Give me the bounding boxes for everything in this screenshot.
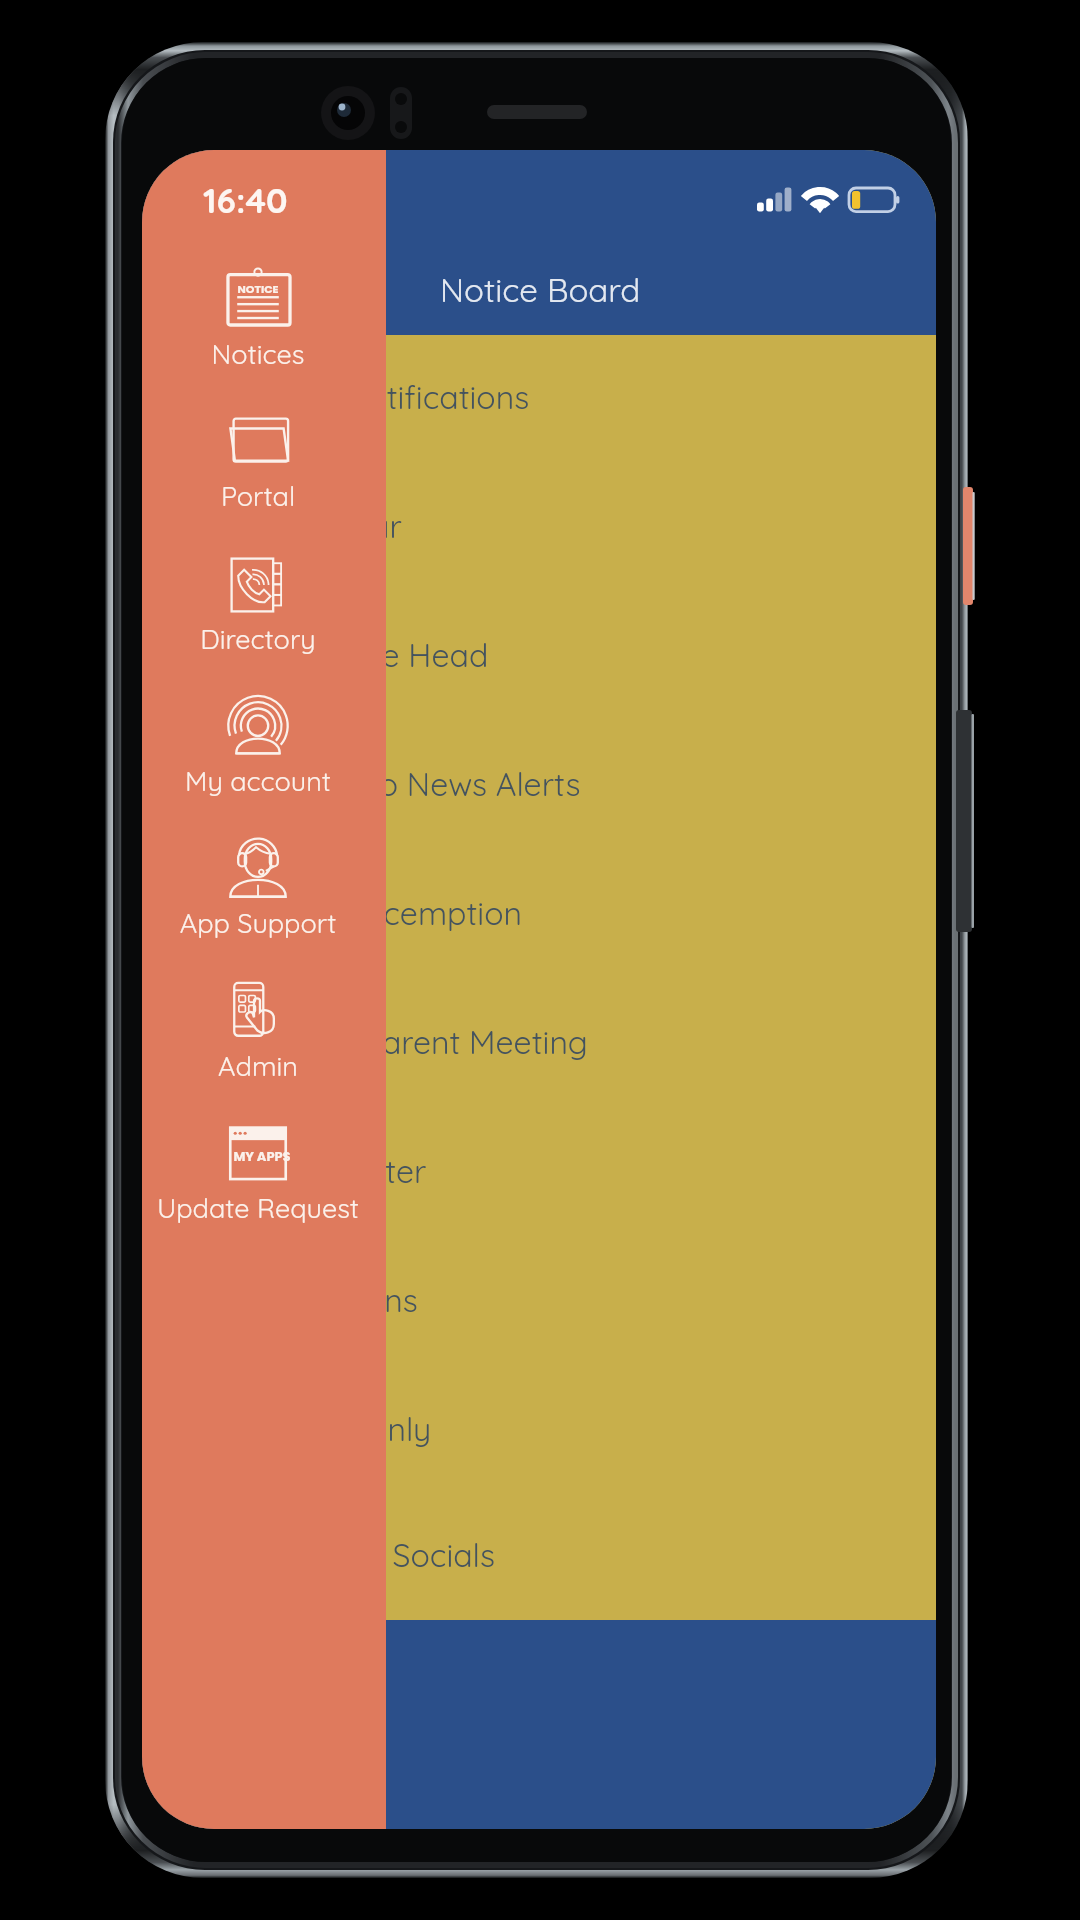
staticText: My account — [142, 764, 380, 798]
button[interactable]: School Socials — [142, 1496, 936, 1620]
button[interactable]: Open navigation menu — [162, 246, 242, 326]
staticText: NOTICE — [225, 281, 291, 296]
button[interactable]: Notices — [340, 1620, 538, 1829]
staticText: Admin — [142, 1049, 380, 1083]
button[interactable]: Teacher Parent Meeting — [142, 980, 936, 1109]
staticText: Echo News Alerts — [326, 764, 581, 804]
button[interactable]: Directory — [142, 552, 386, 672]
staticText: Admissions — [252, 1280, 418, 1320]
button[interactable]: MY APPS — [142, 1121, 386, 1241]
staticText: Staff Only — [283, 1409, 432, 1449]
button[interactable]: My account — [142, 694, 386, 814]
button[interactable]: More — [737, 1620, 936, 1829]
button[interactable]: Admin — [142, 979, 386, 1099]
button[interactable]: Portal — [142, 409, 386, 529]
staticText: 16:40 — [203, 178, 288, 222]
button[interactable]: Home — [142, 1620, 340, 1829]
staticText: MY APPS — [229, 1147, 295, 1165]
staticText: Notice Board — [440, 269, 641, 310]
staticText: App Support — [142, 906, 380, 940]
staticText: Update Request — [142, 1191, 380, 1225]
button[interactable]: Echo News Alerts — [142, 722, 936, 851]
staticText: Directory — [142, 622, 380, 656]
button[interactable]: NOTICE — [142, 267, 386, 387]
staticText: Teacher Parent Meeting — [236, 1022, 588, 1062]
button[interactable]: Newsletter — [142, 1109, 936, 1238]
button[interactable]: Admissions — [142, 1238, 936, 1367]
staticText: Push Notifications — [265, 377, 530, 417]
staticText: School Socials — [285, 1535, 495, 1575]
button[interactable]: Staff Only — [142, 1367, 936, 1496]
staticText: Term Calendar — [183, 506, 402, 546]
button[interactable]: Note from the Head — [142, 593, 936, 722]
staticText: Notices — [142, 337, 380, 371]
button[interactable]: Push Notifications — [142, 335, 936, 464]
button[interactable]: App Support — [142, 836, 386, 956]
staticText: Portal — [142, 479, 380, 513]
staticText: Newsletter — [269, 1151, 427, 1191]
button[interactable]: Term Calendar — [142, 464, 936, 593]
button[interactable]: Exam Excemption — [142, 851, 936, 980]
staticText: Note from the Head — [192, 635, 489, 675]
staticText: Exam Excemption — [259, 893, 523, 933]
